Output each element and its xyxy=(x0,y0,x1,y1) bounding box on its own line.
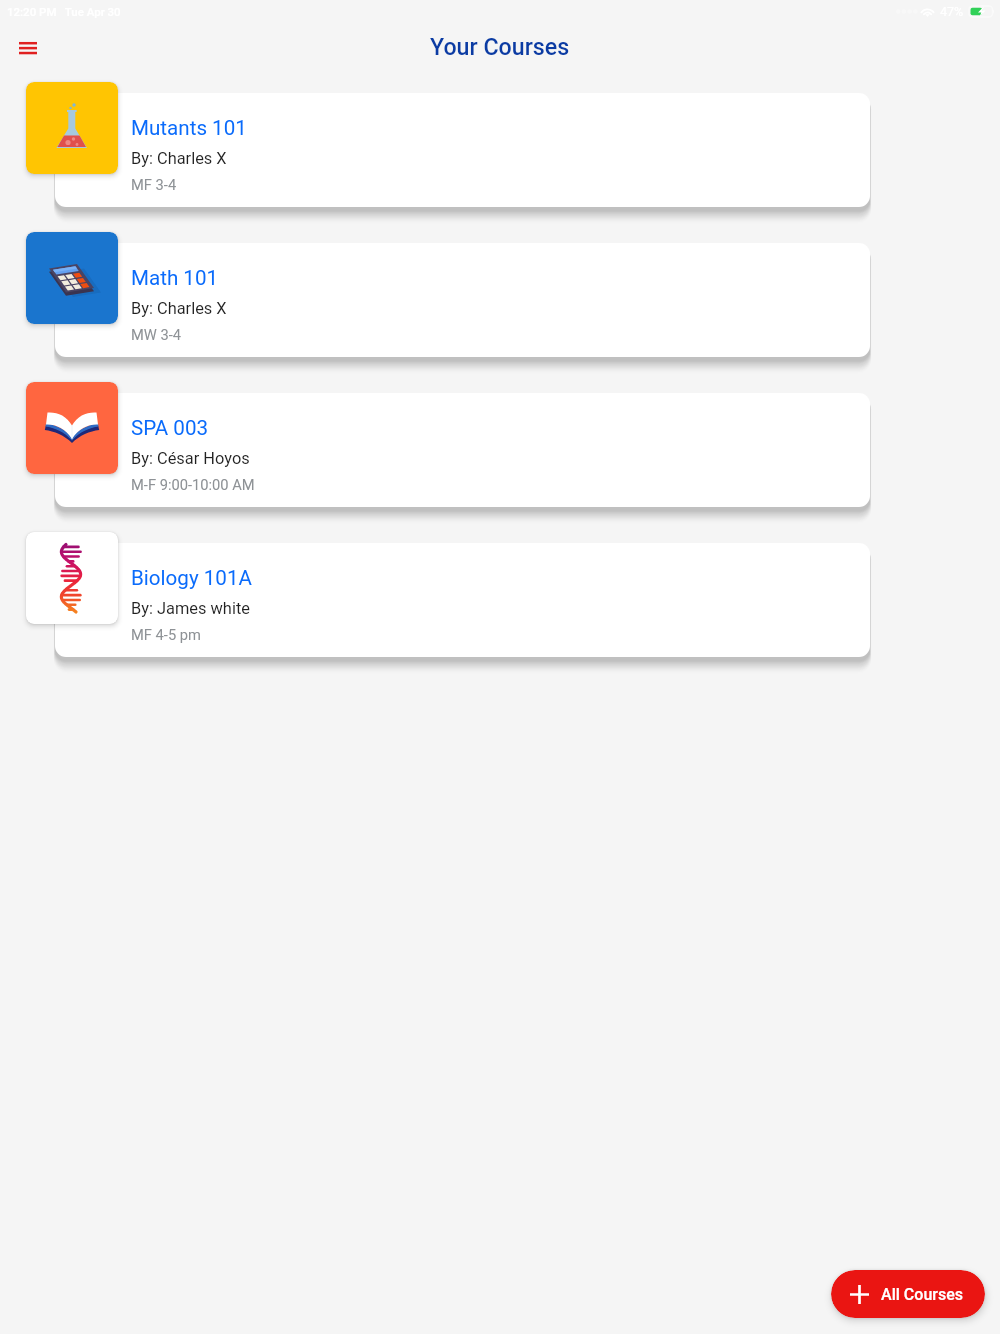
button[interactable]: Mutants 101 xyxy=(0,82,1000,207)
staticText: Your Courses xyxy=(430,33,570,60)
button[interactable]: SPA 003 xyxy=(0,382,1000,507)
staticText: By: Charles X xyxy=(131,299,227,318)
button[interactable]: All Courses xyxy=(831,1270,985,1318)
staticText: Biology 101A xyxy=(131,566,252,590)
staticText: 47% xyxy=(940,4,964,19)
button[interactable]: Biology 101A xyxy=(0,532,1000,657)
staticText: By: Charles X xyxy=(131,149,227,168)
staticText: By: James white xyxy=(131,599,250,618)
button[interactable]: Math 101 xyxy=(0,232,1000,357)
staticText: M-F 9:00-10:00 AM xyxy=(131,476,255,493)
staticText: Mutants 101 xyxy=(131,116,247,140)
button[interactable]: Menu xyxy=(8,28,48,68)
staticText: SPA 003 xyxy=(131,416,209,440)
staticText: By: César Hoyos xyxy=(131,449,250,468)
staticText: 12:20 PM Tue Apr 30 xyxy=(7,5,121,18)
staticText: MW 3-4 xyxy=(131,326,182,343)
staticText: All Courses xyxy=(881,1285,964,1304)
staticText: Math 101 xyxy=(131,266,219,290)
staticText: MF 3-4 xyxy=(131,176,177,193)
staticText: MF 4-5 pm xyxy=(131,626,201,643)
